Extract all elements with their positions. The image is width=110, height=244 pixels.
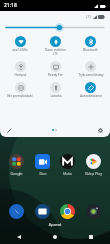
button[interactable]: Dane mobilne (38, 35, 73, 57)
button[interactable]: Messages (32, 204, 53, 219)
button[interactable]: Google (6, 154, 27, 176)
button[interactable]: Hotspot (2, 60, 38, 78)
button[interactable]: Moto (57, 154, 78, 176)
button[interactable]: Recents (86, 232, 96, 242)
staticText: Ready For (48, 73, 63, 77)
staticText: Sklep Play (85, 171, 102, 176)
button[interactable]: Camera (83, 204, 104, 219)
button[interactable]: Bluetooth (73, 35, 108, 53)
staticText: xxx2.4GHz (12, 48, 28, 52)
button[interactable]: Ready For (38, 60, 73, 78)
button[interactable]: Latarka (38, 81, 73, 99)
button[interactable]: Settings (96, 126, 105, 135)
button[interactable]: Nie przeszkadzać (2, 81, 38, 99)
staticText: Latarka (50, 94, 62, 98)
button[interactable]: Sklep Play (83, 154, 104, 176)
staticText: 21:18 (4, 2, 17, 9)
staticText: Nie przeszkadzać (7, 94, 33, 98)
button[interactable]: Edit tiles (5, 126, 14, 135)
staticText: Dane mobilne (45, 48, 66, 52)
staticText: Aparat (0, 222, 110, 227)
staticText: Duo (39, 171, 47, 176)
button[interactable]: Home (50, 232, 60, 242)
button[interactable]: Autoobracanie (73, 81, 108, 99)
staticText: Tryb samolotowy (78, 73, 104, 77)
button[interactable]: Duo (32, 154, 53, 176)
button[interactable]: Tryb samolotowy (73, 60, 108, 78)
button[interactable]: Phone (6, 204, 27, 219)
staticText: Autoobracanie (80, 94, 102, 98)
staticText: Moto (63, 171, 72, 176)
staticText: Hotspot (14, 73, 27, 77)
staticText: LTE (86, 15, 92, 19)
button[interactable]: Chrome (57, 204, 78, 219)
staticText: Google (10, 171, 23, 176)
button[interactable]: xxx2.4GHz (2, 35, 38, 53)
button[interactable]: Back (14, 232, 24, 242)
staticText: Bluetooth (83, 48, 98, 52)
staticText: LTE (53, 52, 58, 56)
